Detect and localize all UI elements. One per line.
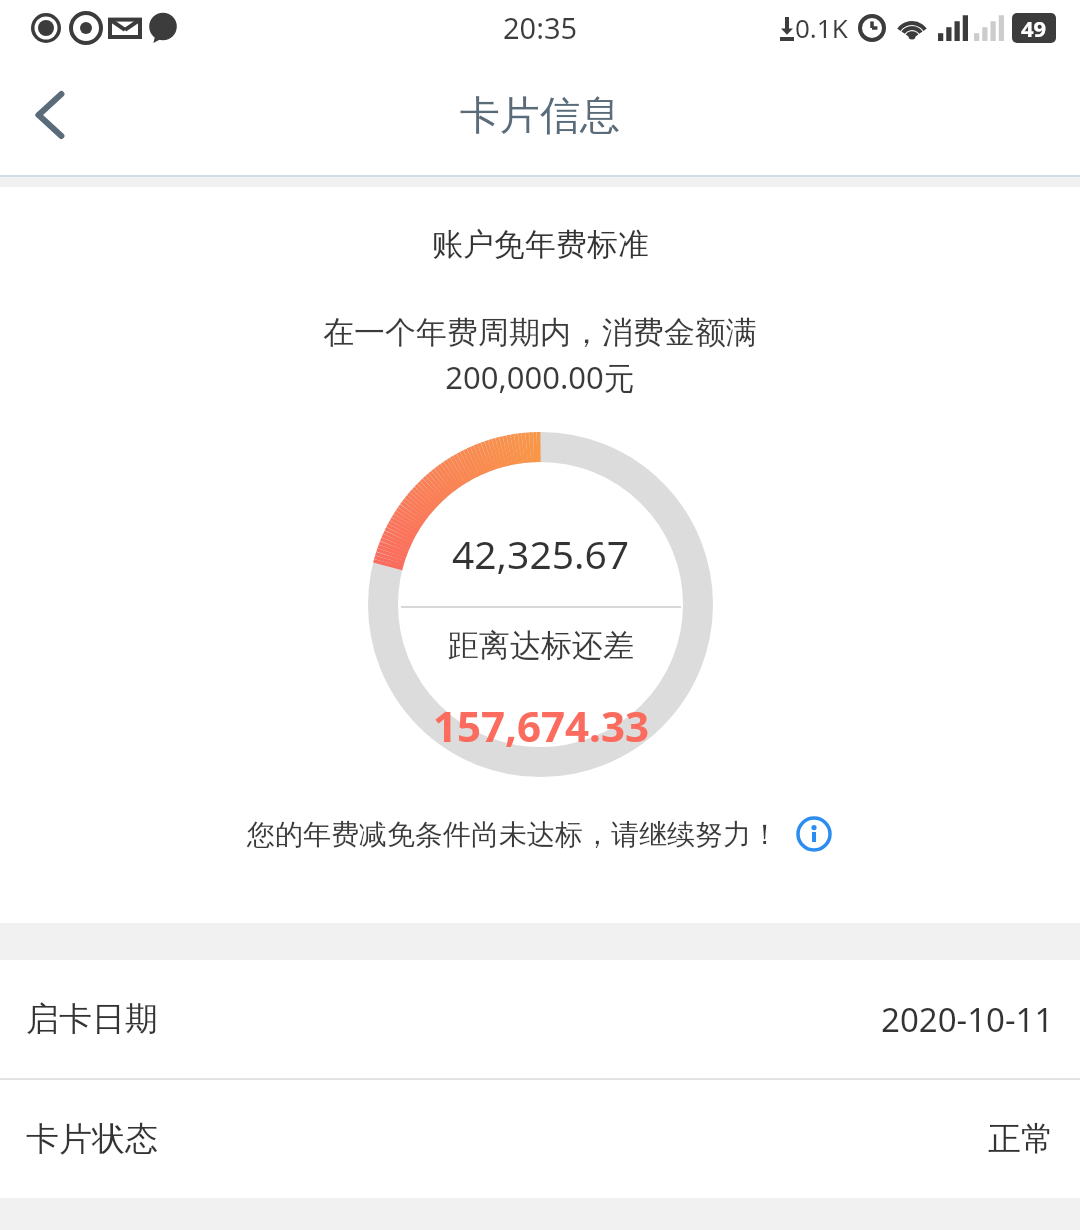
staticText: 在一个年费周期内，消费金额满 200,000.00元	[323, 313, 757, 399]
staticText: 启卡日期	[26, 998, 158, 1040]
staticText: 42,325.67	[452, 527, 630, 580]
staticText: 距离达标还差	[448, 626, 634, 665]
staticText: 您的年费减免条件尚未达标，请继续努力！	[247, 817, 779, 852]
staticText: 卡片信息	[460, 90, 620, 140]
staticText: 正常	[988, 1118, 1054, 1160]
staticText: 49	[1021, 13, 1047, 43]
button[interactable]: Info	[795, 815, 833, 853]
staticText: 2020-10-11	[881, 997, 1054, 1042]
button[interactable]: Back	[0, 65, 100, 165]
staticText: 20:35	[503, 8, 578, 47]
staticText: 0.1K	[795, 10, 848, 45]
button[interactable]: 卡片状态	[0, 1080, 1080, 1198]
button[interactable]: 启卡日期	[0, 960, 1080, 1078]
staticText: 157,674.33	[433, 697, 649, 754]
staticText: 卡片状态	[26, 1118, 158, 1160]
staticText: 账户免年费标准	[432, 225, 649, 264]
